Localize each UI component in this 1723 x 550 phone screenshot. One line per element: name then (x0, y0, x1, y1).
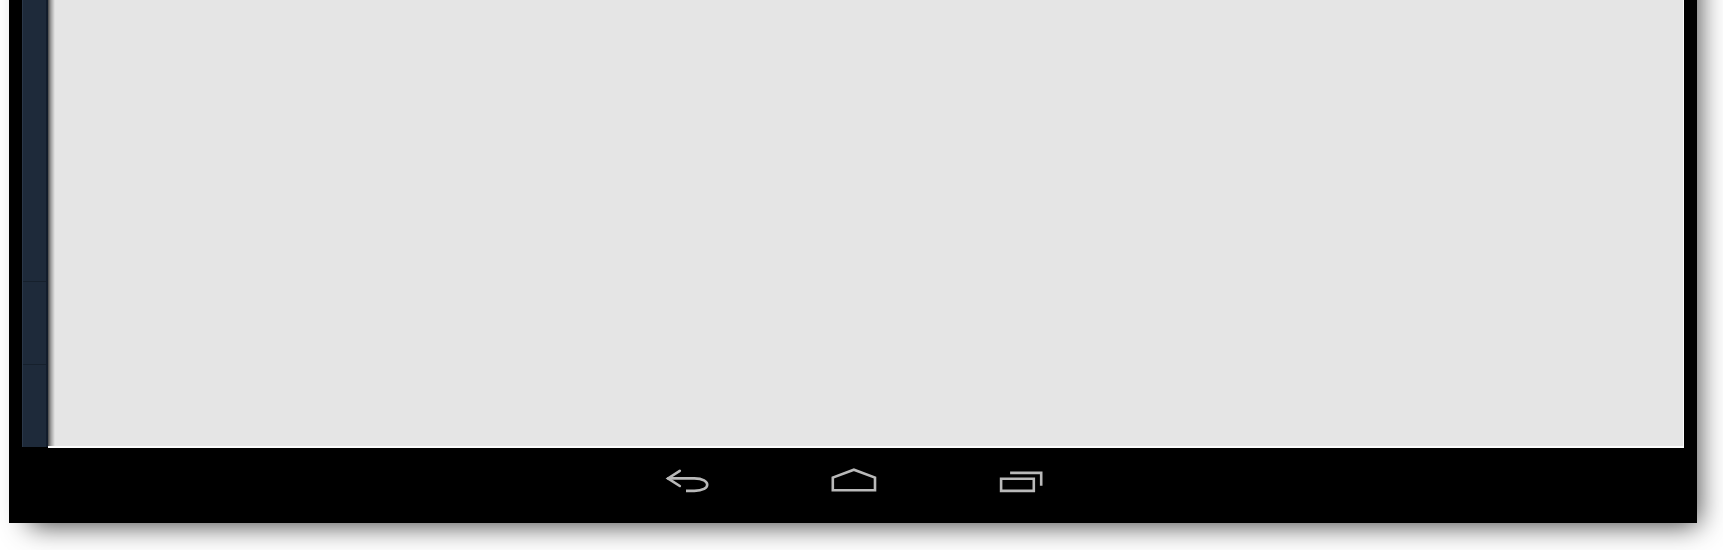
button[interactable]: Home (820, 455, 892, 523)
button[interactable]: Back (652, 455, 724, 523)
button[interactable]: Recent apps (988, 455, 1060, 523)
button[interactable]: Navigation drawer (22, 0, 47, 447)
